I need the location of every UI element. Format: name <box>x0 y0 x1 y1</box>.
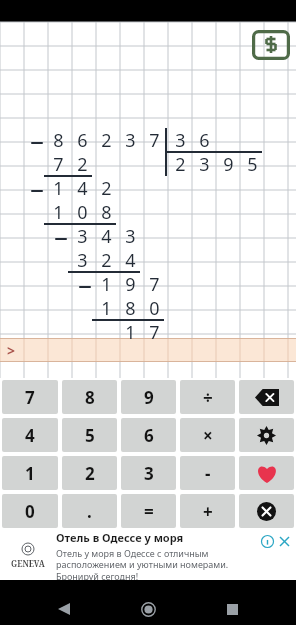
staticText: 3 <box>144 462 154 485</box>
staticText: 1 <box>101 296 112 320</box>
staticText: 3 <box>199 152 210 176</box>
button[interactable]: 3 <box>121 456 176 490</box>
button[interactable]: 1 <box>2 456 58 490</box>
staticText: 0 <box>25 500 35 523</box>
button[interactable]: + <box>180 494 235 528</box>
button[interactable]: 2 <box>62 456 117 490</box>
staticText: 8 <box>85 386 95 409</box>
button[interactable]: > <box>0 338 296 362</box>
staticText: 6 <box>199 128 210 152</box>
staticText: 9 <box>125 272 136 296</box>
staticText: 5 <box>85 424 95 447</box>
staticText: 4 <box>101 224 112 248</box>
staticText: 5 <box>247 152 258 176</box>
staticText: 7 <box>149 320 160 344</box>
staticText: 3 <box>77 224 88 248</box>
staticText: + <box>203 500 213 523</box>
button[interactable]: Clear <box>239 494 294 528</box>
staticText: 1 <box>53 176 64 200</box>
button[interactable]: Back <box>44 593 84 625</box>
button[interactable]: 7 <box>2 380 58 414</box>
staticText: 9 <box>144 386 154 409</box>
staticText: Отель у моря в Одессе с отличным располо… <box>56 547 264 580</box>
staticText: . <box>87 500 92 523</box>
staticText: ÷ <box>203 386 213 409</box>
button[interactable]: × <box>180 418 235 452</box>
staticText: 2 <box>101 128 112 152</box>
staticText: 0 <box>77 200 88 224</box>
button[interactable]: GENEVA <box>0 530 296 580</box>
staticText: GENEVA <box>11 558 45 569</box>
staticText: 6 <box>77 128 88 152</box>
staticText: = <box>144 500 154 523</box>
button[interactable]: . <box>62 494 117 528</box>
button[interactable]: ÷ <box>180 380 235 414</box>
button[interactable]: Recents <box>212 593 252 625</box>
staticText: Отель в Одессе у моря <box>56 530 184 545</box>
button[interactable]: Home <box>128 593 168 625</box>
staticText: 2 <box>175 152 186 176</box>
staticText: 2 <box>101 176 112 200</box>
staticText: 3 <box>175 128 186 152</box>
staticText: 9 <box>223 152 234 176</box>
staticText: 4 <box>25 424 35 447</box>
staticText: 2 <box>101 248 112 272</box>
button[interactable]: 4 <box>2 418 58 452</box>
staticText: 0 <box>149 296 160 320</box>
staticText: 8 <box>53 128 64 152</box>
staticText: 7 <box>149 128 160 152</box>
button[interactable]: = <box>121 494 176 528</box>
staticText: 1 <box>101 272 112 296</box>
staticText: 3 <box>125 128 136 152</box>
button[interactable]: 9 <box>121 380 176 414</box>
staticText: 8 <box>125 296 136 320</box>
staticText: 7 <box>25 386 35 409</box>
button[interactable]: Ad info <box>261 535 274 548</box>
staticText: 7 <box>149 272 160 296</box>
button[interactable]: - <box>180 456 235 490</box>
staticText: 4 <box>77 176 88 200</box>
staticText: 3 <box>125 224 136 248</box>
button[interactable]: 8 <box>62 380 117 414</box>
button[interactable]: Settings <box>239 418 294 452</box>
staticText: 1 <box>125 320 136 344</box>
staticText: 4 <box>125 248 136 272</box>
staticText: 2 <box>85 462 95 485</box>
staticText: 2 <box>77 152 88 176</box>
staticText: 8 <box>101 200 112 224</box>
button[interactable]: Close ad <box>278 535 291 548</box>
staticText: 6 <box>144 424 154 447</box>
button[interactable]: 6 <box>121 418 176 452</box>
staticText: > <box>7 341 16 360</box>
staticText: 1 <box>25 462 35 485</box>
button[interactable]: Favorite <box>239 456 294 490</box>
button[interactable]: 5 <box>62 418 117 452</box>
staticText: 7 <box>53 152 64 176</box>
staticText: 3 <box>77 248 88 272</box>
button[interactable]: 0 <box>2 494 58 528</box>
staticText: - <box>205 462 211 485</box>
staticText: 1 <box>53 200 64 224</box>
staticText: × <box>203 424 213 447</box>
button[interactable]: Remove ads <box>252 30 290 60</box>
button[interactable]: Backspace <box>239 380 294 414</box>
